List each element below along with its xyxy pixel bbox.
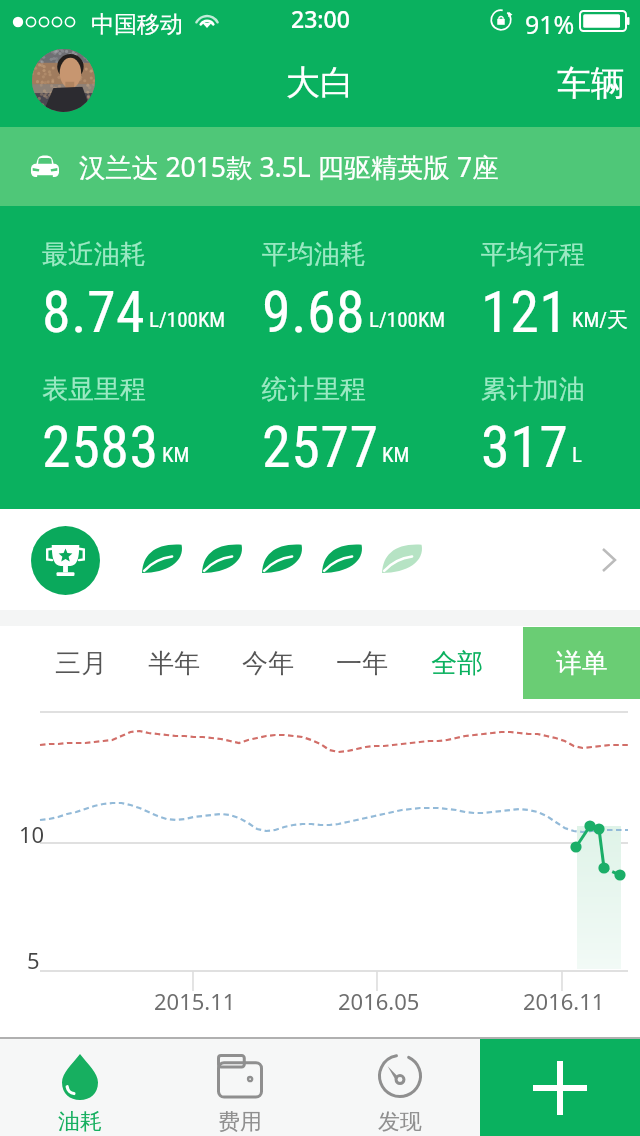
staticText: L/100KM — [149, 308, 226, 333]
staticText: 2015.11 — [154, 986, 236, 1016]
staticText: 三月 — [55, 647, 107, 680]
staticText: L — [572, 443, 582, 468]
button[interactable]: 全部 — [424, 626, 490, 700]
staticText: 费用 — [218, 1108, 262, 1136]
staticText: 半年 — [148, 647, 200, 680]
staticText: 9.68 — [262, 278, 366, 346]
staticText: 2583 — [42, 413, 159, 481]
staticText: 一年 — [336, 647, 388, 680]
staticText: 表显里程 — [42, 373, 146, 406]
button[interactable]: 费用 — [160, 1039, 320, 1136]
staticText: KM/天 — [572, 307, 629, 333]
staticText: 2016.05 — [338, 986, 420, 1016]
staticText: 油耗 — [58, 1108, 102, 1136]
staticText: 今年 — [242, 647, 294, 680]
button[interactable]: 油耗 — [0, 1039, 160, 1136]
staticText: 统计里程 — [262, 373, 366, 406]
staticText: 平均行程 — [481, 238, 585, 271]
button[interactable]: More — [578, 524, 640, 596]
staticText: KM — [382, 443, 410, 468]
button[interactable]: 三月 — [48, 626, 114, 700]
button[interactable]: 详单 — [523, 627, 640, 699]
staticText: 最近油耗 — [42, 238, 146, 271]
staticText: 91% — [525, 7, 575, 41]
staticText: 2016.11 — [523, 986, 605, 1016]
button[interactable]: Add — [480, 1039, 640, 1136]
staticText: 23:00 — [291, 3, 350, 34]
button[interactable]: Achievements — [31, 526, 100, 595]
staticText: 发现 — [378, 1108, 422, 1136]
staticText: 2577 — [262, 413, 379, 481]
staticText: 车辆 — [557, 62, 625, 105]
button[interactable]: 一年 — [329, 626, 395, 700]
staticText: 121 — [481, 278, 569, 346]
staticText: 大白 — [286, 61, 354, 104]
button[interactable]: 半年 — [141, 626, 207, 700]
staticText: 详单 — [556, 647, 608, 680]
button[interactable]: 发现 — [320, 1039, 480, 1136]
button[interactable]: 车辆 — [531, 44, 640, 123]
staticText: 累计加油 — [481, 373, 585, 406]
staticText: L/100KM — [369, 308, 446, 333]
staticText: 10 — [19, 819, 45, 849]
staticText: 5 — [27, 945, 40, 975]
button[interactable]: 今年 — [235, 626, 301, 700]
staticText: 317 — [481, 413, 569, 481]
staticText: 全部 — [431, 647, 483, 680]
staticText: KM — [162, 443, 190, 468]
staticText: 平均油耗 — [262, 238, 366, 271]
staticText: 8.74 — [42, 278, 146, 346]
staticText: 中国移动 — [91, 10, 183, 39]
staticText: 汉兰达 2015款 3.5L 四驱精英版 7座 — [79, 149, 499, 185]
button[interactable]: Profile — [32, 49, 95, 112]
